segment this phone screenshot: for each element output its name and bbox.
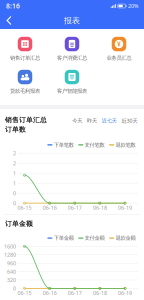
staticText: 06-16 [43, 289, 57, 296]
button[interactable]: 昨天 [86, 116, 98, 125]
staticText: 昨天 [87, 117, 97, 124]
staticText: 退款金额 [115, 235, 135, 241]
staticText: 06-16 [43, 204, 57, 211]
staticText: ¥ [117, 40, 121, 48]
staticText: 订单金额 [5, 220, 33, 228]
staticText: 0 [13, 285, 16, 292]
staticText: 06-18 [93, 204, 107, 211]
staticText: 销售订单汇总 [10, 55, 40, 61]
staticText: 640 [7, 268, 16, 275]
button[interactable]: ¥ [95, 36, 142, 62]
staticText: 06-17 [68, 289, 82, 296]
button[interactable]: 货款毛利报表 [1, 69, 48, 95]
button[interactable]: 客户消费汇总 [48, 36, 95, 62]
staticText: 06-18 [93, 289, 107, 296]
button[interactable]: 客户智能报表 [48, 69, 95, 95]
staticText: 客户智能报表 [57, 88, 87, 94]
staticText: 货款毛利报表 [10, 88, 40, 94]
staticText: 20% [128, 2, 138, 10]
staticText: 06-15 [17, 204, 31, 211]
staticText: 1 [13, 170, 16, 177]
staticText: 0 [13, 200, 16, 207]
staticText: 支付笔数 [85, 142, 105, 148]
staticText: 今天 [72, 117, 82, 124]
staticText: 下单金额 [54, 235, 74, 241]
button[interactable]: Back [2, 12, 16, 28]
staticText: 退款笔数 [115, 142, 135, 148]
button[interactable]: 近30天 [120, 116, 139, 125]
staticText: 客户消费汇总 [57, 55, 87, 61]
staticText: 06-19 [118, 289, 132, 296]
staticText: 06-19 [118, 204, 132, 211]
staticText: 960 [7, 260, 16, 267]
button[interactable]: 今天 [71, 116, 84, 125]
staticText: 8:16 [6, 2, 20, 10]
staticText: 1 [13, 180, 16, 187]
staticText: 320 [7, 276, 16, 283]
staticText: 报表 [64, 16, 80, 25]
staticText: 下单笔数 [54, 142, 74, 148]
staticText: 0 [13, 190, 16, 197]
staticText: 销售订单汇总 [5, 116, 47, 124]
staticText: 1600 [4, 243, 16, 250]
staticText: 支付金额 [85, 235, 105, 241]
staticText: 06-17 [68, 204, 82, 211]
staticText: 业务员汇总 [106, 55, 131, 61]
staticText: 订单数 [5, 125, 26, 134]
staticText: 1280 [4, 251, 16, 258]
staticText: 2 [13, 150, 16, 157]
staticText: 近七天 [102, 117, 117, 124]
staticText: 近30天 [122, 117, 138, 124]
staticText: 06-15 [17, 289, 31, 296]
button[interactable]: 近七天 [100, 116, 118, 125]
staticText: 2 [13, 160, 16, 167]
button[interactable]: 销售订单汇总 [1, 36, 48, 62]
